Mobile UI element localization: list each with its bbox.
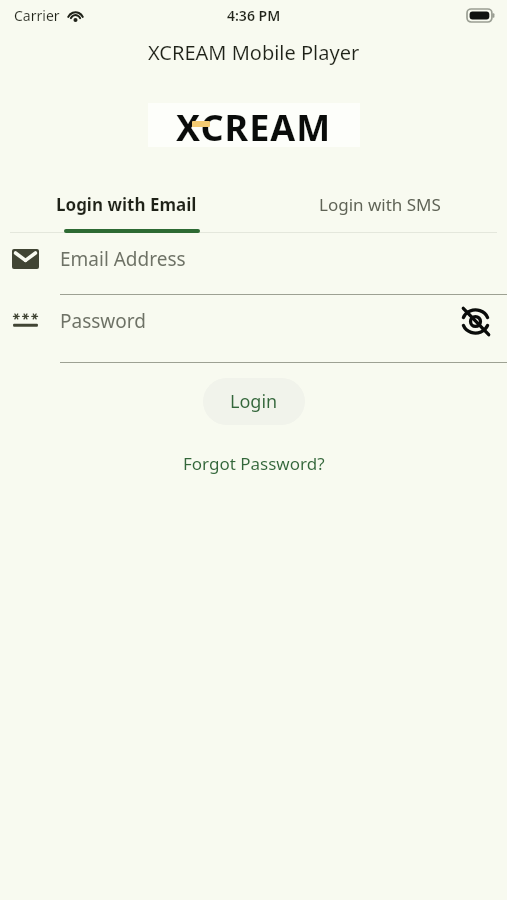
staticText: Email Address: [60, 246, 186, 272]
button[interactable]: Email Address: [0, 233, 507, 295]
button[interactable]: Login: [203, 378, 305, 425]
button[interactable]: Forgot Password?: [171, 444, 337, 483]
staticText: Forgot Password?: [183, 452, 325, 475]
staticText: 4:36 PM: [227, 6, 281, 25]
staticText: XCREAM Mobile Player: [148, 39, 360, 66]
staticText: Login with SMS: [319, 193, 441, 216]
button[interactable]: Show password: [455, 301, 495, 341]
staticText: Carrier: [14, 6, 60, 25]
staticText: Login: [230, 389, 278, 414]
staticText: XCREAM: [176, 103, 332, 147]
button[interactable]: Password: [0, 295, 507, 363]
button[interactable]: Login with Email: [0, 176, 253, 233]
button[interactable]: Login with SMS: [253, 176, 507, 233]
staticText: Login with Email: [56, 193, 197, 216]
staticText: Password: [60, 308, 146, 334]
